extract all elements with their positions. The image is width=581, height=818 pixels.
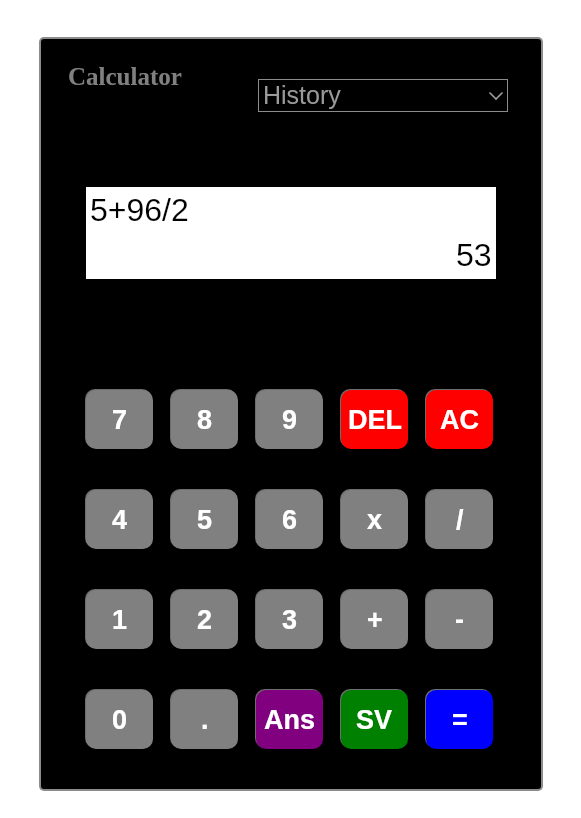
- staticText: 2: [197, 605, 213, 635]
- button[interactable]: zero: [85, 689, 153, 749]
- staticText: x: [367, 505, 383, 535]
- button[interactable]: Answer: [255, 689, 323, 749]
- staticText: 5: [197, 505, 213, 535]
- button[interactable]: Minus: [425, 589, 493, 649]
- staticText: 4: [112, 505, 128, 535]
- staticText: -: [455, 605, 464, 635]
- staticText: /: [456, 505, 464, 535]
- button[interactable]: Multiply: [340, 489, 408, 549]
- button[interactable]: one: [85, 589, 153, 649]
- button[interactable]: Divide: [425, 489, 493, 549]
- button[interactable]: Plus: [340, 589, 408, 649]
- button[interactable]: seven: [85, 389, 153, 449]
- staticText: SV: [356, 705, 393, 735]
- staticText: 6: [282, 505, 298, 535]
- staticText: 1: [112, 605, 128, 635]
- staticText: 8: [197, 405, 213, 435]
- staticText: 9: [282, 405, 298, 435]
- staticText: =: [452, 705, 468, 735]
- button[interactable]: Decimal point: [170, 689, 238, 749]
- button[interactable]: five: [170, 489, 238, 549]
- button[interactable]: All clear: [425, 389, 493, 449]
- button[interactable]: four: [85, 489, 153, 549]
- staticText: 0: [112, 705, 128, 735]
- staticText: Calculator: [68, 63, 182, 91]
- button[interactable]: six: [255, 489, 323, 549]
- staticText: History: [263, 81, 341, 109]
- button[interactable]: two: [170, 589, 238, 649]
- staticText: .: [201, 705, 209, 735]
- button[interactable]: nine: [255, 389, 323, 449]
- staticText: 7: [112, 405, 128, 435]
- staticText: DEL: [348, 405, 402, 435]
- staticText: AC: [440, 405, 479, 435]
- staticText: 53: [456, 237, 492, 273]
- staticText: 5+96/2: [90, 192, 189, 228]
- button[interactable]: eight: [170, 389, 238, 449]
- button[interactable]: Equals: [425, 689, 493, 749]
- button[interactable]: three: [255, 589, 323, 649]
- button[interactable]: Delete: [340, 389, 408, 449]
- button[interactable]: History: [259, 80, 507, 111]
- button[interactable]: Save: [340, 689, 408, 749]
- staticText: 3: [282, 605, 298, 635]
- staticText: Ans: [264, 705, 316, 735]
- staticText: +: [367, 605, 383, 635]
